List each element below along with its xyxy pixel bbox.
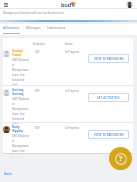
- staticText: Rippley: [12, 129, 24, 133]
- button[interactable]: VIEW SUBMISSIONS: [88, 54, 129, 63]
- staticText: George: [12, 49, 24, 53]
- staticText: VIEW SUBMISSIONS: [94, 133, 124, 137]
- staticText: SET ACTIVITIES: [97, 96, 120, 100]
- staticText: All learners: [3, 26, 20, 30]
- staticText: Foster: [12, 53, 22, 57]
- staticText: Gorting: [12, 88, 24, 92]
- button[interactable]: SET ACTIVITIES: [88, 93, 129, 102]
- button[interactable]: VIEW SUBMISSIONS: [88, 130, 129, 139]
- button[interactable]: George: [3, 47, 133, 85]
- staticText: GMT/Diploma in Management Learn Line fun…: [12, 134, 30, 155]
- staticText: In Progress: [65, 50, 79, 54]
- staticText: ?: [119, 154, 123, 164]
- staticText: GMT/Diploma in Management Learn Line fun…: [12, 58, 30, 86]
- staticText: BCF: [35, 126, 40, 130]
- staticText: BCF: [35, 89, 40, 93]
- button[interactable]: Account: [126, 1, 133, 8]
- staticText: Manage your learners with our world-clas…: [3, 11, 64, 15]
- staticText: Employee: [33, 42, 45, 46]
- button[interactable]: Back: [4, 171, 12, 176]
- staticText: Back: [4, 171, 12, 176]
- button[interactable]: Gorting: [3, 86, 133, 122]
- button[interactable]: Help: [109, 147, 132, 170]
- staticText: Gorting: [12, 92, 24, 96]
- button[interactable]: Messages: [26, 24, 41, 34]
- staticText: VIEW SUBMISSIONS: [94, 57, 124, 61]
- staticText: bud: [61, 1, 71, 8]
- staticText: Rudy: [12, 125, 20, 129]
- staticText: GMT/Diploma in Management Learn Line fun…: [12, 97, 30, 124]
- button[interactable]: Menu: [2, 1, 9, 8]
- staticText: BCF: [35, 50, 40, 54]
- button[interactable]: Rudy: [3, 123, 133, 153]
- staticText: In Progress: [65, 126, 79, 130]
- staticText: Status: [65, 42, 73, 46]
- button[interactable]: All learners: [3, 24, 20, 34]
- staticText: In Progress: [65, 89, 79, 93]
- button[interactable]: Submissions: [47, 24, 66, 34]
- staticText: Submissions: [47, 26, 66, 30]
- staticText: Messages: [26, 26, 41, 30]
